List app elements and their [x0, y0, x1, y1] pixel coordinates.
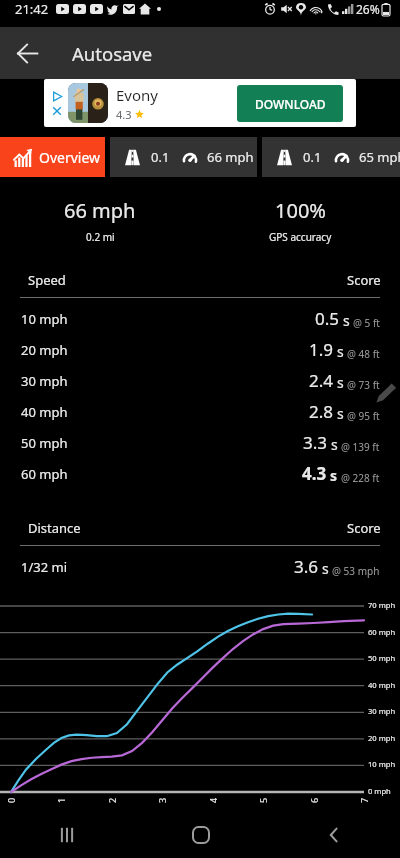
button[interactable]: 20 mph [0, 334, 400, 365]
staticText: 20 mph [368, 733, 396, 743]
staticText: 1 [55, 797, 67, 803]
staticText: 0 [5, 797, 17, 803]
staticText: s [343, 311, 350, 330]
staticText: 3.6 [294, 555, 319, 578]
staticText: s [322, 559, 329, 578]
button[interactable]: Home [134, 812, 267, 858]
staticText: 5 [257, 797, 269, 803]
staticText: 0.1 [303, 148, 322, 166]
staticText: 30 mph [368, 706, 396, 716]
staticText: 100% [275, 197, 326, 224]
staticText: @ 53 mph [332, 564, 380, 578]
staticText: 1/32 mi [21, 558, 68, 576]
staticText: 40 mph [21, 403, 68, 421]
staticText: 0 mph [368, 786, 391, 796]
staticText: @ 73 ft [347, 378, 380, 392]
button[interactable]: 40 mph [0, 396, 400, 427]
button[interactable]: Recent apps [0, 812, 134, 858]
staticText: @ 95 ft [347, 409, 380, 423]
staticText: Score [347, 271, 381, 289]
staticText: 4.3 [302, 462, 327, 485]
button[interactable]: Back [0, 27, 55, 79]
button[interactable]: Evony [44, 79, 356, 127]
staticText: 50 mph [21, 434, 68, 452]
staticText: s [331, 435, 338, 454]
button[interactable]: 10 mph [0, 303, 400, 334]
button[interactable]: Back [267, 812, 400, 858]
button[interactable]: 50 mph [0, 427, 400, 458]
staticText: 40 mph [368, 680, 396, 690]
staticText: @ 228 ft [341, 471, 380, 485]
staticText: 50 mph [368, 653, 396, 663]
button[interactable]: Overview [0, 137, 105, 177]
staticText: 21:42 [15, 0, 49, 18]
staticText: 3 [156, 797, 168, 803]
staticText: 0.5 [315, 307, 340, 330]
staticText: Distance [28, 519, 81, 537]
staticText: 10 mph [21, 310, 68, 328]
staticText: Overview [39, 148, 101, 167]
staticText: 0.1 [151, 148, 170, 166]
button[interactable]: DOWNLOAD [237, 85, 343, 122]
button[interactable]: 0.1 [110, 137, 257, 177]
staticText: @ 5 ft [353, 316, 380, 330]
staticText: 20 mph [21, 341, 68, 359]
staticText: 10 mph [368, 759, 396, 769]
staticText: s [330, 466, 338, 485]
staticText: Evony [116, 85, 158, 105]
staticText: 66 mph [207, 148, 254, 166]
staticText: s [337, 404, 344, 423]
staticText: 6 [308, 797, 320, 803]
staticText: 4 [207, 797, 219, 803]
button[interactable]: 0.1 [262, 137, 400, 177]
button[interactable]: Edit [374, 381, 398, 405]
staticText: 70 mph [368, 600, 396, 610]
staticText: DOWNLOAD [255, 96, 326, 112]
staticText: 7 [358, 797, 370, 803]
staticText: Autosave [72, 41, 153, 66]
staticText: 60 mph [21, 465, 68, 483]
button[interactable]: 60 mph [0, 458, 400, 489]
staticText: 1.9 [309, 338, 334, 361]
staticText: 2.4 [309, 369, 334, 392]
staticText: 2.8 [309, 400, 334, 423]
button[interactable]: 1/32 mi [0, 551, 400, 582]
button[interactable]: 30 mph [0, 365, 400, 396]
staticText: Score [347, 519, 381, 537]
staticText: 26% [356, 1, 380, 17]
staticText: 2 [106, 797, 118, 803]
staticText: 66 mph [64, 197, 136, 224]
staticText: 3.3 [303, 431, 328, 454]
staticText: Speed [28, 271, 66, 289]
staticText: @ 139 ft [341, 440, 380, 454]
staticText: @ 48 ft [347, 347, 380, 361]
staticText: 65 mph [359, 148, 400, 166]
staticText: 60 mph [368, 627, 396, 637]
staticText: s [337, 373, 344, 392]
staticText: s [337, 342, 344, 361]
staticText: GPS accuracy [269, 230, 332, 244]
staticText: 4.3 [116, 107, 132, 122]
staticText: 0.2 mi [86, 230, 115, 244]
staticText: 30 mph [21, 372, 68, 390]
